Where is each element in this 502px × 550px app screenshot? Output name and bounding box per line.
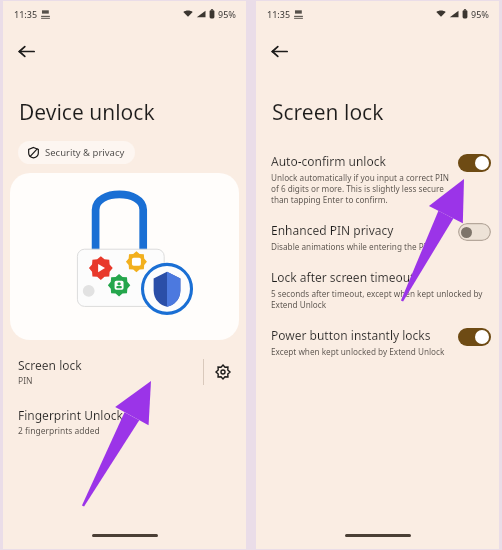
staticText: 11:35 [14,8,38,20]
button[interactable] [10,173,239,340]
staticText: Except when kept unlocked by Extend Unlo… [271,346,445,357]
staticText: 5 seconds after timeout, except when kep… [271,288,491,310]
staticText: Unlock automatically if you input a corr… [271,172,452,205]
staticText: Lock after screen timeout [271,269,415,285]
staticText: 95% [218,8,236,20]
button[interactable]: Screen lock settings [204,353,242,391]
button[interactable]: Power button instantly locks [256,326,499,357]
staticText: 95% [471,8,489,20]
staticText: Auto-confirm unlock [271,153,386,169]
button[interactable]: Auto-confirm unlock [256,152,499,205]
button[interactable]: Toggle off [458,223,491,241]
staticText: Disable animations while entering the PI… [271,241,433,252]
button[interactable]: Back [9,34,43,68]
staticText: Device unlock [19,98,155,127]
button[interactable]: Screen lock [3,353,246,391]
staticText: Screen lock [272,98,384,127]
staticText: Screen lock [18,357,82,373]
button[interactable]: Toggle on [458,328,491,346]
staticText: Security & privacy [45,146,125,159]
button[interactable]: Security & privacy [18,141,135,164]
staticText: Enhanced PIN privacy [271,222,394,238]
button[interactable]: Back [262,34,296,68]
button[interactable]: Lock after screen timeout [256,268,499,310]
staticText: 11:35 [267,8,291,20]
staticText: Fingerprint Unlock [18,407,123,423]
staticText: PIN [18,375,33,387]
staticText: Power button instantly locks [271,327,431,343]
staticText: 2 fingerprints added [18,425,100,437]
button[interactable]: Fingerprint Unlock [3,405,246,439]
button[interactable]: Toggle on [458,154,491,172]
button[interactable]: Enhanced PIN privacy [256,221,499,252]
